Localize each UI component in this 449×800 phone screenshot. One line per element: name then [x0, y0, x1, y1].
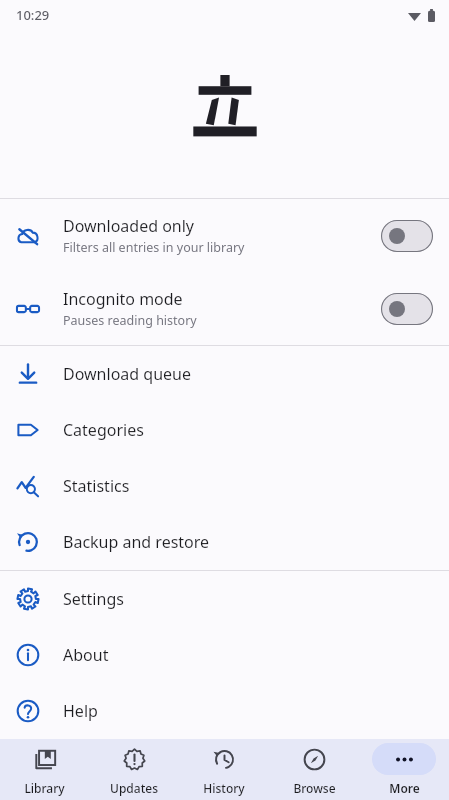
staticText: Statistics: [63, 475, 130, 497]
staticText: Backup and restore: [63, 531, 210, 553]
staticText: Filters all entries in your library: [63, 239, 245, 256]
button[interactable]: [381, 293, 433, 325]
button[interactable]: Categories: [0, 402, 449, 458]
staticText: Settings: [63, 588, 124, 610]
staticText: Incognito mode: [63, 288, 183, 310]
staticText: Browse: [293, 780, 336, 796]
button[interactable]: History: [179, 739, 269, 800]
button[interactable]: More: [359, 739, 449, 800]
staticText: Updates: [110, 780, 158, 796]
staticText: About: [63, 644, 109, 666]
button[interactable]: Updates: [89, 739, 179, 800]
button[interactable]: Statistics: [0, 458, 449, 514]
staticText: History: [203, 780, 245, 796]
staticText: Download queue: [63, 363, 191, 385]
button[interactable]: Help: [0, 683, 449, 739]
button[interactable]: Settings: [0, 571, 449, 627]
staticText: Downloaded only: [63, 215, 195, 237]
staticText: Pauses reading history: [63, 312, 197, 329]
button[interactable]: Browse: [269, 739, 359, 800]
button[interactable]: [381, 220, 433, 252]
other: More: [393, 748, 416, 771]
staticText: Help: [63, 700, 98, 722]
button[interactable]: Backup and restore: [0, 514, 449, 570]
button[interactable]: Download queue: [0, 346, 449, 402]
staticText: Library: [24, 780, 65, 796]
button[interactable]: Downloaded only: [0, 199, 449, 272]
staticText: More: [389, 780, 420, 796]
button[interactable]: Library: [0, 739, 89, 800]
staticText: 10:29: [16, 6, 50, 24]
button[interactable]: Incognito mode: [0, 272, 449, 345]
button[interactable]: About: [0, 627, 449, 683]
staticText: Categories: [63, 419, 144, 441]
